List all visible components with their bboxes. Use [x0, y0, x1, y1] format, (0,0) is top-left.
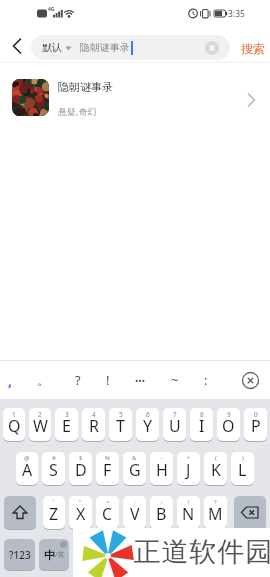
button[interactable]: !	[106, 371, 110, 389]
staticText: F	[103, 459, 112, 481]
button[interactable]: 7	[163, 408, 186, 441]
staticText: ?123	[9, 548, 31, 562]
staticText: '	[53, 498, 55, 506]
staticText: 默认	[42, 41, 62, 54]
staticText: ?	[214, 498, 217, 506]
staticText: S	[49, 459, 58, 481]
staticText: A	[22, 459, 33, 481]
staticText: C	[102, 503, 113, 525]
staticText: !	[188, 498, 190, 506]
button[interactable]: 6	[136, 408, 159, 441]
button[interactable]: +	[177, 452, 200, 485]
button[interactable]: 0	[244, 408, 267, 441]
button[interactable]	[4, 28, 30, 60]
button[interactable]: 搜索	[236, 32, 270, 64]
staticText: N	[182, 503, 195, 525]
staticText: T	[116, 415, 125, 437]
staticText: (	[215, 454, 217, 462]
staticText: 8	[200, 410, 204, 419]
button[interactable]: @	[16, 452, 38, 485]
staticText: D	[75, 459, 87, 481]
staticText: $	[79, 454, 83, 462]
button[interactable]: 4	[82, 408, 105, 441]
staticText: 0	[254, 410, 258, 419]
staticText: :	[134, 498, 136, 506]
button[interactable]: '	[43, 496, 65, 529]
button[interactable]: 隐朝谜事录	[0, 63, 270, 135]
button[interactable]: 中	[39, 539, 69, 570]
staticText: 悬疑,奇幻	[58, 105, 97, 117]
staticText: R	[89, 415, 99, 437]
button[interactable]	[234, 496, 266, 529]
staticText: 3:35	[228, 8, 245, 20]
staticText: Q	[8, 415, 21, 437]
staticText: 隐朝谜事录	[58, 80, 113, 94]
staticText: 4	[92, 410, 96, 419]
staticText: 1	[12, 410, 16, 419]
button[interactable]: )	[231, 452, 254, 485]
staticText: U	[169, 415, 181, 437]
staticText: L	[238, 459, 247, 481]
button[interactable]	[235, 539, 266, 570]
staticText: &	[132, 454, 137, 462]
button[interactable]: 9	[217, 408, 240, 441]
button[interactable]: 8	[190, 408, 213, 441]
button[interactable]: !	[177, 496, 200, 529]
button[interactable]	[200, 35, 224, 60]
button[interactable]: -	[150, 452, 173, 485]
staticText: 6	[146, 410, 150, 419]
staticText: 正道软件园	[133, 535, 270, 569]
button[interactable]: #	[42, 452, 65, 485]
staticText: %	[105, 454, 110, 462]
button[interactable]: ···	[135, 372, 146, 388]
staticText: 4G	[48, 6, 55, 13]
staticText: ;	[161, 498, 163, 506]
staticText: 2	[38, 410, 42, 419]
staticText: P	[251, 415, 261, 437]
button[interactable]	[73, 539, 197, 570]
staticText: K	[211, 459, 221, 481]
staticText: @	[24, 454, 30, 462]
button[interactable]: 。	[37, 372, 50, 388]
staticText: 隐朝谜事录	[80, 41, 130, 54]
staticText: M	[208, 503, 223, 525]
button[interactable]	[4, 496, 36, 529]
staticText: V	[130, 503, 140, 525]
button[interactable]: :	[123, 496, 146, 529]
staticText: 。	[210, 547, 222, 562]
button[interactable]: $	[69, 452, 92, 485]
button[interactable]: %	[96, 452, 119, 485]
staticText: 3	[65, 410, 69, 419]
button[interactable]: ~	[171, 371, 179, 389]
staticText: Z	[49, 503, 59, 525]
staticText: H	[156, 459, 168, 481]
button[interactable]	[237, 367, 263, 393]
button[interactable]: "	[69, 496, 92, 529]
button[interactable]: 。	[201, 539, 231, 570]
button[interactable]: 默认	[31, 35, 230, 60]
button[interactable]: ;	[150, 496, 173, 529]
staticText: G	[129, 459, 141, 481]
staticText: =	[106, 498, 110, 506]
staticText: X	[76, 503, 86, 525]
button[interactable]: (	[204, 452, 227, 485]
button[interactable]: 2	[29, 408, 51, 441]
button[interactable]: 5	[109, 408, 132, 441]
button[interactable]: 3	[55, 408, 78, 441]
staticText: J	[186, 459, 191, 481]
button[interactable]: ?123	[4, 539, 35, 570]
staticText: /英	[55, 550, 65, 560]
staticText: Y	[143, 415, 153, 437]
staticText: 中	[44, 548, 55, 562]
button[interactable]: ,	[8, 371, 12, 390]
staticText: O	[222, 415, 235, 437]
button[interactable]: 1	[3, 408, 25, 441]
button[interactable]: ?	[75, 371, 81, 389]
button[interactable]: :	[204, 371, 208, 389]
staticText: I	[199, 415, 205, 437]
button[interactable]: &	[123, 452, 146, 485]
button[interactable]: ?	[204, 496, 227, 529]
button[interactable]: =	[96, 496, 119, 529]
staticText: B	[156, 503, 167, 525]
staticText: )	[242, 454, 244, 462]
